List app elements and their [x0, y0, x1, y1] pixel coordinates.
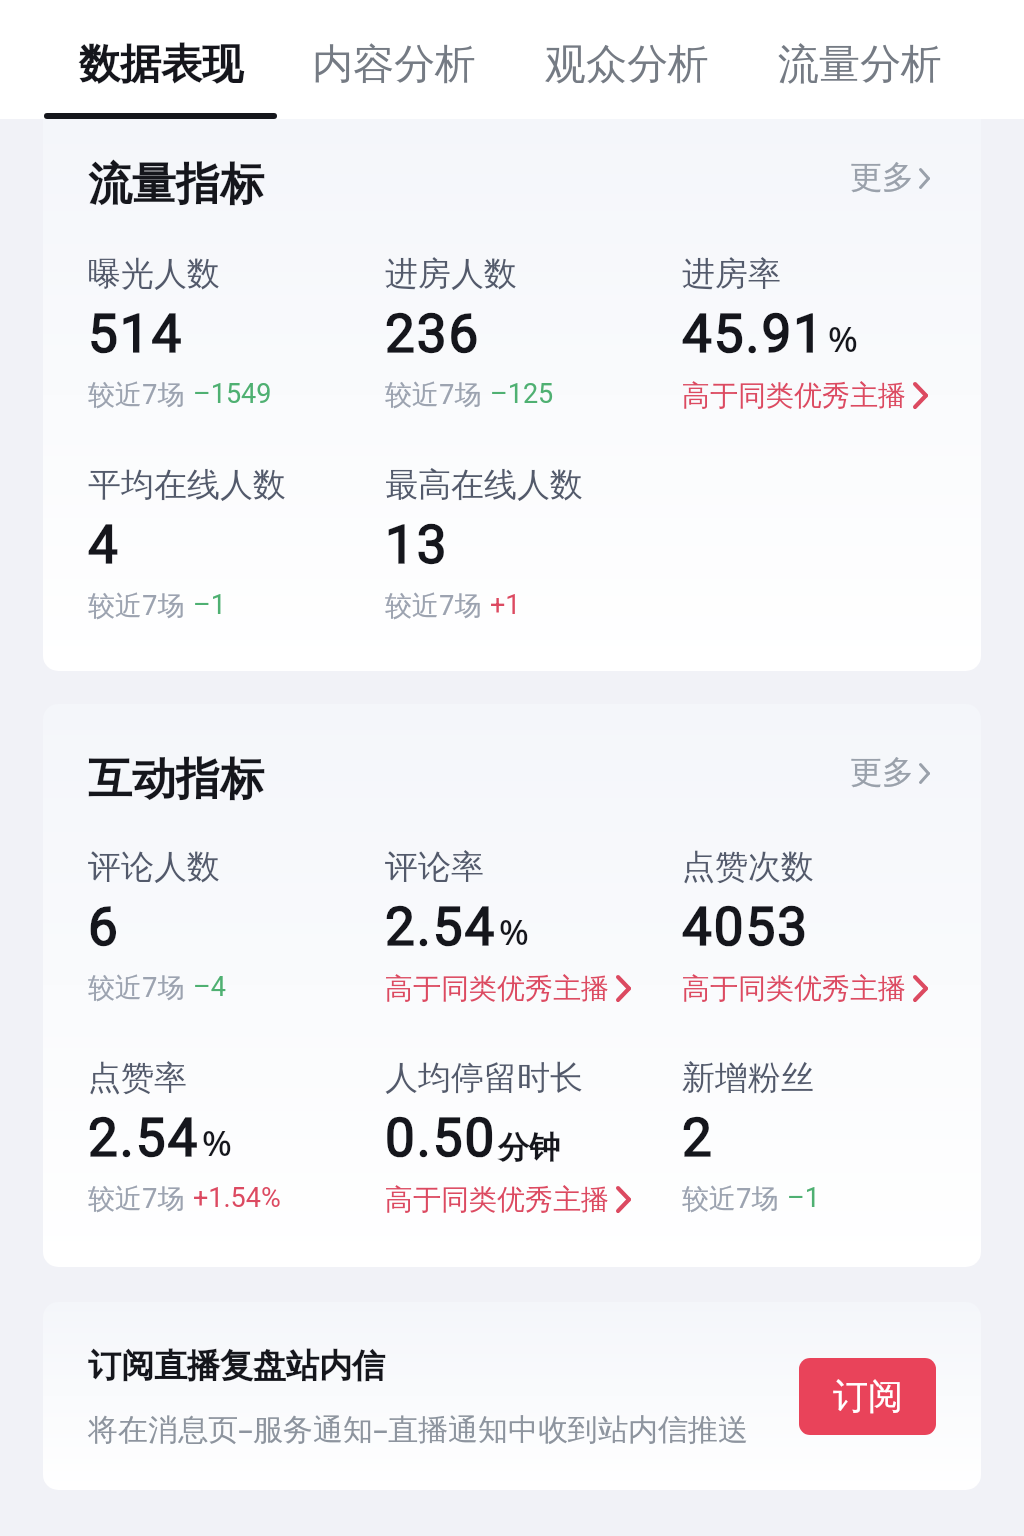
staticText: 分钟	[498, 1128, 560, 1167]
staticText: –1	[787, 1182, 820, 1214]
staticText: 高于同类优秀主播	[682, 378, 906, 413]
staticText: 流量指标	[88, 157, 264, 212]
staticText: 2.54	[88, 1107, 200, 1169]
button[interactable]: 曝光人数	[88, 260, 385, 471]
button[interactable]: 新增粉丝	[682, 1064, 979, 1267]
button[interactable]: 高于同类优秀主播	[682, 971, 929, 1006]
button[interactable]: 观众分析	[510, 0, 743, 119]
staticText: 点赞率	[88, 1057, 187, 1099]
staticText: 数据表现	[79, 39, 243, 91]
button[interactable]: 高于同类优秀主播	[385, 971, 632, 1006]
staticText: 6	[88, 896, 120, 958]
staticText: 较近7场	[88, 586, 185, 623]
staticText: –4	[193, 971, 226, 1003]
button[interactable]: 最高在线人数	[385, 471, 682, 671]
staticText: 观众分析	[545, 39, 709, 91]
staticText: 较近7场	[88, 968, 185, 1005]
staticText: 内容分析	[312, 39, 476, 91]
button[interactable]: 评论率	[385, 853, 682, 1064]
button[interactable]: 平均在线人数	[88, 471, 385, 671]
staticText: 曝光人数	[88, 253, 220, 295]
staticText: 较近7场	[385, 375, 482, 412]
staticText: 新增粉丝	[682, 1057, 814, 1099]
button[interactable]: 流量分析	[743, 0, 976, 119]
staticText: 2.54	[385, 896, 497, 958]
staticText: +1.54%	[193, 1182, 281, 1214]
staticText: %	[499, 908, 529, 956]
button[interactable]: 进房人数	[385, 260, 682, 471]
staticText: +1	[490, 589, 521, 621]
staticText: 45.91	[682, 303, 826, 365]
button[interactable]: 订阅	[799, 1358, 936, 1435]
staticText: 较近7场	[88, 375, 185, 412]
staticText: –1	[193, 589, 226, 621]
staticText: 高于同类优秀主播	[385, 971, 609, 1006]
button[interactable]: 评论人数	[88, 853, 385, 1064]
staticText: 点赞次数	[682, 846, 814, 888]
button[interactable]: 点赞次数	[682, 853, 979, 1064]
staticText: 高于同类优秀主播	[682, 971, 906, 1006]
staticText: –125	[490, 378, 554, 410]
staticText: 人均停留时长	[385, 1057, 583, 1099]
staticText: 订阅直播复盘站内信	[88, 1345, 385, 1387]
button[interactable]: 人均停留时长	[385, 1064, 682, 1267]
button[interactable]: 更多	[850, 157, 931, 197]
staticText: 互动指标	[88, 752, 264, 807]
staticText: 较近7场	[682, 1179, 779, 1216]
staticText: 评论率	[385, 846, 484, 888]
button[interactable]: 点赞率	[88, 1064, 385, 1267]
staticText: 2	[682, 1107, 714, 1169]
staticText: 订阅	[833, 1374, 903, 1418]
button[interactable]: 内容分析	[277, 0, 510, 119]
staticText: 较近7场	[88, 1179, 185, 1216]
staticText: 13	[385, 514, 449, 576]
staticText: 最高在线人数	[385, 464, 583, 506]
staticText: 平均在线人数	[88, 464, 286, 506]
staticText: 评论人数	[88, 846, 220, 888]
staticText: 更多	[850, 752, 914, 792]
staticText: 高于同类优秀主播	[385, 1182, 609, 1217]
staticText: 4053	[682, 896, 810, 958]
button[interactable]: 进房率	[682, 260, 979, 471]
button[interactable]: 数据表现	[44, 0, 277, 119]
staticText: 进房人数	[385, 253, 517, 295]
staticText: %	[202, 1119, 232, 1167]
staticText: 514	[88, 303, 184, 365]
staticText: 更多	[850, 157, 914, 197]
staticText: –1549	[193, 378, 272, 410]
staticText: 4	[88, 514, 120, 576]
staticText: 0.50	[385, 1107, 497, 1169]
staticText: %	[828, 315, 858, 363]
staticText: 进房率	[682, 253, 781, 295]
staticText: 将在消息页–服务通知–直播通知中收到站内信推送	[88, 1408, 748, 1449]
staticText: 流量分析	[778, 39, 942, 91]
staticText: 较近7场	[385, 586, 482, 623]
button[interactable]: 更多	[850, 752, 931, 792]
button[interactable]: 高于同类优秀主播	[385, 1182, 632, 1217]
button[interactable]: 高于同类优秀主播	[682, 378, 929, 413]
staticText: 236	[385, 303, 481, 365]
